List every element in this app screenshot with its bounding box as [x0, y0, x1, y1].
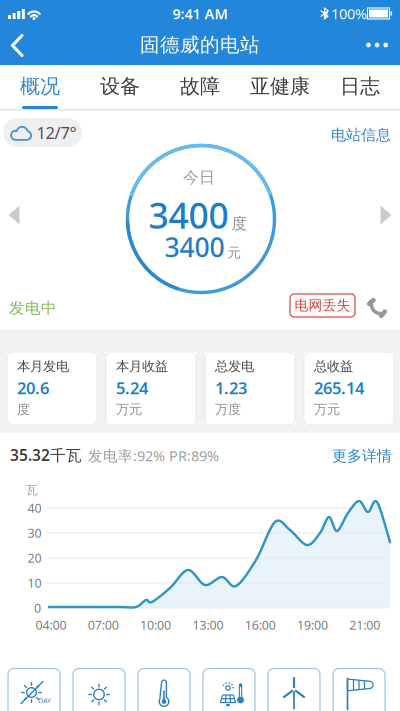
staticText: 总收益 — [314, 358, 353, 375]
staticText: 3400 — [164, 229, 224, 265]
staticText: 40 — [27, 499, 41, 516]
staticText: 更多详情 — [332, 447, 392, 465]
button[interactable]: Day irradiation — [8, 668, 60, 711]
staticText: 20 — [27, 549, 41, 566]
button[interactable]: Panel temperature — [203, 668, 255, 711]
staticText: 元 — [227, 244, 241, 261]
staticText: 本月发电 — [17, 358, 69, 375]
staticText: 35.32千瓦 — [10, 444, 82, 465]
staticText: 瓦 — [26, 482, 38, 497]
button[interactable]: Wind speed — [268, 668, 320, 711]
staticText: 30 — [27, 524, 41, 541]
staticText: 16:00 — [245, 616, 276, 633]
button[interactable]: Next station — [380, 205, 391, 224]
staticText: 12/7° — [36, 121, 76, 144]
staticText: 固德威的电站 — [140, 33, 260, 57]
button[interactable]: Previous station — [8, 205, 19, 224]
staticText: 本月收益 — [116, 358, 168, 375]
button[interactable]: More — [359, 36, 395, 54]
staticText: 今日 — [183, 167, 215, 188]
staticText: 3400 — [148, 191, 228, 239]
button[interactable]: 概况 — [0, 65, 80, 109]
staticText: 万元 — [116, 401, 142, 418]
staticText: 265.14 — [314, 377, 364, 399]
button[interactable]: 设备 — [80, 65, 160, 109]
staticText: 发电中 — [9, 298, 57, 318]
button[interactable]: 电站信息 — [331, 126, 391, 144]
staticText: 1.23 — [215, 377, 247, 399]
button[interactable]: Back — [0, 27, 40, 65]
staticText: 5.24 — [116, 377, 148, 399]
staticText: 04:00 — [35, 616, 66, 633]
button[interactable]: Call — [366, 297, 388, 319]
staticText: 9:41 AM — [172, 4, 227, 23]
staticText: 10:00 — [140, 616, 171, 633]
staticText: 19:00 — [297, 616, 328, 633]
staticText: 日志 — [340, 74, 380, 99]
staticText: 万元 — [314, 401, 340, 418]
staticText: 10 — [27, 574, 41, 591]
staticText: 13:00 — [192, 616, 223, 633]
staticText: 度 — [17, 401, 30, 418]
staticText: 21:00 — [349, 616, 380, 633]
staticText: 度 — [231, 214, 247, 233]
staticText: 万度 — [215, 401, 241, 418]
button[interactable]: 故障 — [160, 65, 240, 109]
staticText: 发电率:92% PR:89% — [88, 446, 219, 465]
staticText: 0 — [34, 599, 41, 616]
staticText: 故障 — [180, 74, 220, 99]
button[interactable]: 亚健康 — [240, 65, 320, 109]
button[interactable]: Wind direction — [333, 668, 385, 711]
staticText: 亚健康 — [250, 74, 310, 99]
button[interactable]: Irradiance — [73, 668, 125, 711]
button[interactable]: 更多详情 — [332, 447, 392, 465]
button[interactable]: 日志 — [320, 65, 400, 109]
staticText: 电站信息 — [331, 126, 391, 144]
staticText: 20.6 — [17, 377, 49, 399]
staticText: 概况 — [20, 74, 60, 99]
staticText: 设备 — [100, 74, 140, 99]
button[interactable]: 电网丢失 — [290, 294, 355, 317]
staticText: DAY — [38, 696, 51, 705]
staticText: 100% — [331, 4, 367, 23]
staticText: 电网丢失 — [294, 297, 350, 314]
button[interactable]: Temperature — [138, 668, 190, 711]
staticText: 07:00 — [88, 616, 119, 633]
staticText: 总发电 — [215, 358, 254, 375]
